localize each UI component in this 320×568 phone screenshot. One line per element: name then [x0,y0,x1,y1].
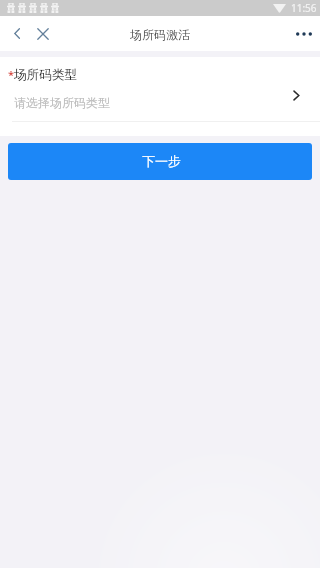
staticText: *场所码类型 [8,67,77,83]
staticText: 11:56 [291,1,317,15]
staticText: 场所码激活 [130,27,190,42]
button[interactable]: Back [4,16,29,51]
staticText: 下一步 [142,153,181,169]
button[interactable]: Close [29,16,55,51]
button[interactable]: 下一步 [8,143,312,180]
button[interactable]: 请选择场所码类型 [0,87,320,117]
staticText: 请选择场所码类型 [14,95,110,110]
button[interactable]: More options [290,16,320,51]
